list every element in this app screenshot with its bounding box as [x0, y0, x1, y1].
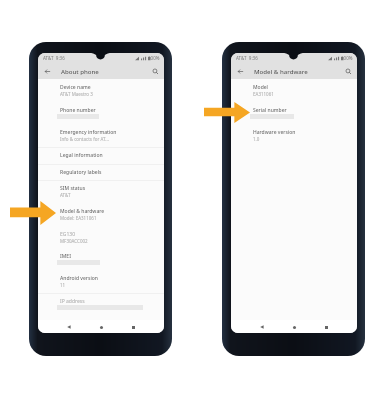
- staticText: IMEI: [60, 253, 71, 260]
- button[interactable]: Recents: [129, 323, 137, 331]
- button[interactable]: Back: [65, 323, 73, 331]
- staticText: IP address: [60, 298, 85, 305]
- button[interactable]: Search: [341, 64, 355, 78]
- staticText: Phone number: [60, 107, 96, 114]
- button[interactable]: Hardware version: [231, 124, 357, 147]
- staticText: Legal information: [60, 152, 103, 159]
- staticText: Android version: [60, 275, 98, 282]
- staticText: 11: [60, 282, 66, 288]
- staticText: Model & hardware: [254, 67, 308, 75]
- button[interactable]: IP address: [38, 293, 164, 315]
- staticText: Model: EA311061: [60, 215, 97, 221]
- button[interactable]: SIM status: [38, 180, 164, 202]
- button[interactable]: Serial number: [231, 102, 357, 124]
- staticText: 100%: [148, 55, 160, 61]
- staticText: EG130: [60, 231, 76, 238]
- staticText: About phone: [61, 67, 99, 75]
- staticText: Info & contacts for AT...: [60, 136, 109, 142]
- button[interactable]: Regulatory labels: [38, 164, 164, 180]
- button[interactable]: Model & hardware: [38, 202, 164, 226]
- button[interactable]: Android version: [38, 270, 164, 293]
- button[interactable]: Home: [97, 323, 105, 331]
- button[interactable]: Model: [231, 79, 357, 102]
- staticText: Device name: [60, 84, 91, 91]
- staticText: MF30ACC002: [60, 238, 88, 244]
- staticText: Model & hardware: [60, 208, 105, 215]
- staticText: AT&T 9:36: [43, 55, 65, 61]
- button[interactable]: Search: [148, 64, 162, 78]
- staticText: Emergency information: [60, 129, 117, 136]
- staticText: SIM status: [60, 185, 86, 192]
- button[interactable]: Back: [40, 64, 54, 78]
- button[interactable]: Recents: [322, 323, 330, 331]
- button[interactable]: Phone number: [38, 102, 164, 124]
- staticText: Hardware version: [253, 129, 296, 136]
- button[interactable]: Back: [258, 323, 266, 331]
- button[interactable]: Legal information: [38, 147, 164, 164]
- staticText: AT&T 9:36: [236, 55, 258, 61]
- staticText: AT&T Maestro 3: [60, 91, 93, 97]
- button[interactable]: IMEI: [38, 248, 164, 270]
- staticText: EA311061: [253, 91, 274, 97]
- button[interactable]: Device name: [38, 79, 164, 102]
- staticText: Serial number: [253, 107, 287, 114]
- staticText: AT&T: [60, 192, 71, 198]
- button[interactable]: Home: [290, 323, 298, 331]
- staticText: 1.0: [253, 136, 260, 142]
- button[interactable]: Emergency information: [38, 124, 164, 147]
- staticText: Model: [253, 84, 268, 91]
- button[interactable]: EG130: [38, 226, 164, 248]
- staticText: 100%: [341, 55, 353, 61]
- staticText: Regulatory labels: [60, 169, 102, 176]
- button[interactable]: Back: [233, 64, 247, 78]
